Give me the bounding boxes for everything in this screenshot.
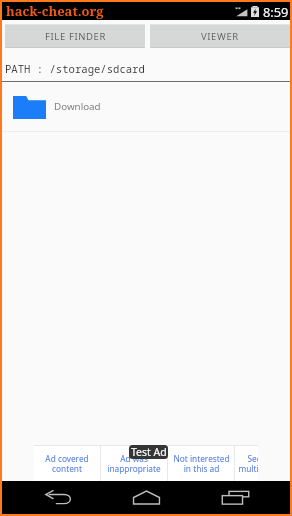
button[interactable]: VIEWER xyxy=(150,24,290,48)
staticText: Not interested in this ad xyxy=(173,453,230,475)
staticText: VIEWER xyxy=(201,30,239,43)
staticText: PATH : /storage/sdcard xyxy=(5,62,145,76)
button[interactable]: FILE FINDER xyxy=(5,24,145,48)
staticText: FILE FINDER xyxy=(45,30,106,43)
staticText: Ad was inappropriate xyxy=(107,453,161,475)
button[interactable]: Ad covered content xyxy=(34,445,100,481)
staticText: See multiple xyxy=(238,453,258,475)
button[interactable]: Recent apps xyxy=(221,481,249,514)
button[interactable]: See multiple xyxy=(235,445,258,481)
button[interactable]: Download xyxy=(2,82,290,131)
staticText: 8:59 xyxy=(263,3,289,20)
button[interactable]: Home xyxy=(132,481,160,514)
staticText: hack-cheat.org xyxy=(6,2,104,20)
staticText: Test Ad xyxy=(131,445,167,459)
button[interactable]: Not interested in this ad xyxy=(168,445,234,481)
button[interactable]: Ad was inappropriate xyxy=(101,445,167,481)
staticText: Ad covered content xyxy=(45,453,89,475)
staticText: Download xyxy=(54,100,101,113)
button[interactable]: Back xyxy=(44,481,72,514)
